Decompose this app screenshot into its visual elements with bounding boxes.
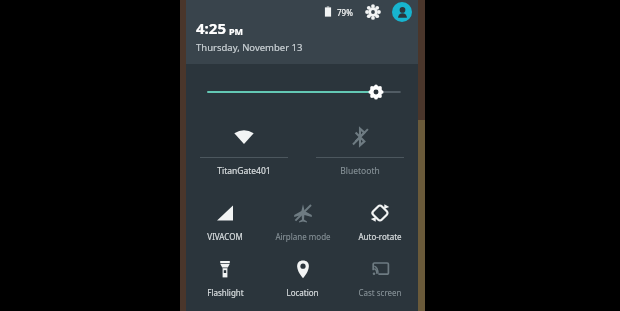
staticText: Cast screen xyxy=(358,287,402,298)
staticText: Airplane mode xyxy=(275,231,331,242)
staticText: Location xyxy=(286,287,319,298)
staticText: 79% xyxy=(337,7,353,18)
staticText: VIVACOM xyxy=(207,231,243,242)
button[interactable]: Bluetooth xyxy=(302,123,418,177)
button[interactable]: TitanGate401 xyxy=(186,123,302,177)
button[interactable]: User profile xyxy=(392,2,412,22)
button[interactable]: Settings xyxy=(364,3,382,21)
staticText: TitanGate401 xyxy=(217,165,271,177)
staticText: PM xyxy=(229,25,244,37)
button[interactable]: Cast screen xyxy=(341,257,418,298)
button[interactable]: Airplane mode xyxy=(264,201,341,242)
staticText: Bluetooth xyxy=(340,165,380,177)
button[interactable]: VIVACOM xyxy=(186,201,264,242)
button[interactable]: Auto-rotate xyxy=(341,201,418,242)
button[interactable]: Flashlight xyxy=(186,257,264,298)
button[interactable]: Brightness xyxy=(186,81,418,103)
staticText: Flashlight xyxy=(207,287,244,298)
staticText: Thursday, November 13 xyxy=(196,41,303,54)
button[interactable]: Location xyxy=(264,257,341,298)
staticText: Auto-rotate xyxy=(358,231,402,242)
staticText: 4:25 xyxy=(196,18,226,38)
